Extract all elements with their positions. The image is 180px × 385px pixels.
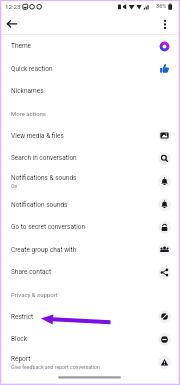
button[interactable]: Create group chat with [0,238,180,261]
button[interactable]: Restrict [0,305,180,328]
staticText: More actions [11,110,46,117]
staticText: Search in conversation [11,154,77,162]
button[interactable]: Notification sounds [0,193,180,216]
button[interactable]: Quick reaction [0,57,180,80]
staticText: Privacy & support [11,291,58,298]
button[interactable]: More options [158,17,172,31]
staticText: Notifications & sounds [11,174,77,182]
staticText: Restrict [11,313,34,321]
staticText: 36% [156,3,167,10]
staticText: Report [11,355,31,363]
button[interactable]: Block [0,328,180,350]
staticText: Share contact [11,268,52,276]
button[interactable]: Search in conversation [0,147,180,169]
button[interactable]: Share contact [0,261,180,283]
staticText: On [11,183,18,189]
staticText: Give feedback and report conversation [11,364,100,370]
button[interactable]: Theme [0,35,180,57]
staticText: View media & files [11,132,64,140]
staticText: Theme [11,42,32,50]
button[interactable]: Nicknames [0,80,180,102]
staticText: Create group chat with [11,246,77,254]
button[interactable]: View media & files [0,124,180,147]
button[interactable]: Go to secret conversation [0,216,180,238]
staticText: 12:23 [5,3,21,10]
staticText: Go to secret conversation [11,223,86,231]
button[interactable]: Back [3,15,21,33]
button[interactable]: Notifications & sounds [0,169,180,193]
staticText: Notification sounds [11,201,68,209]
staticText: Quick reaction [11,65,53,73]
staticText: Block [11,335,28,343]
staticText: Nicknames [11,87,44,95]
button[interactable]: Report [0,350,180,374]
